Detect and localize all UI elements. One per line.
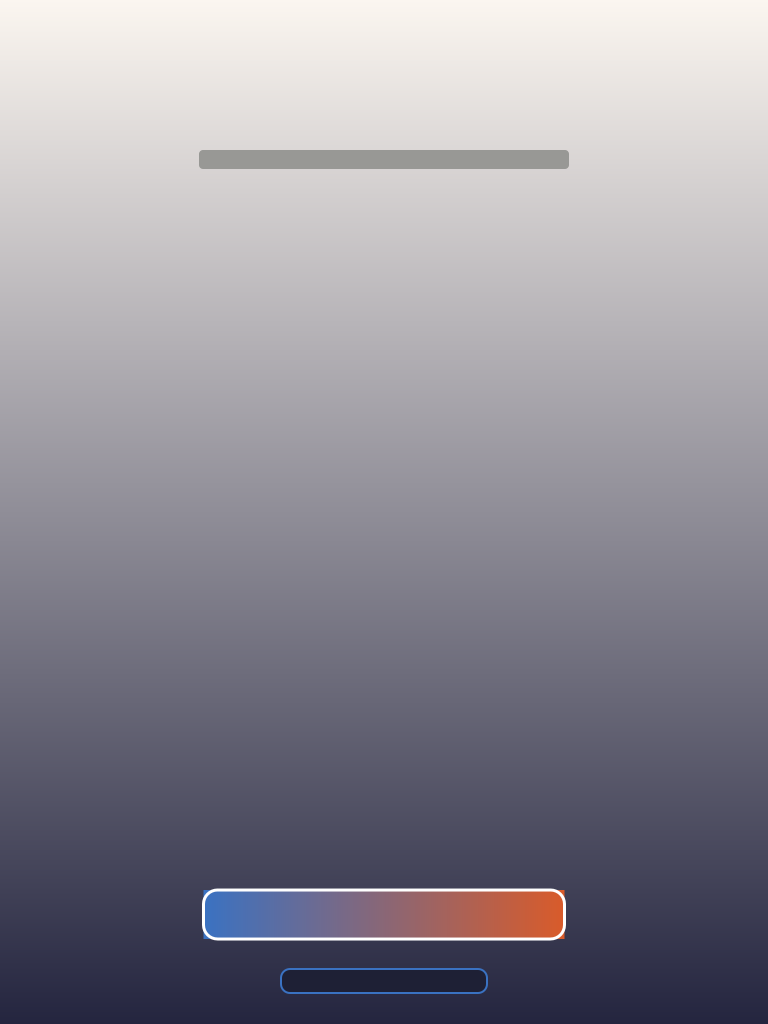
button[interactable]: Get started bbox=[203, 890, 564, 939]
button[interactable]: Learn more bbox=[281, 969, 487, 993]
